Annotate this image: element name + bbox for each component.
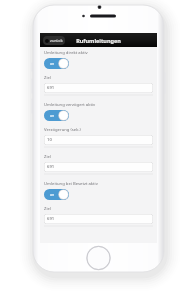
staticText: 691 — [47, 85, 55, 91]
button[interactable]: Umleitung bei Besetzt aktiv — [40, 178, 157, 203]
button[interactable]: Umleitung an — [44, 189, 69, 200]
button[interactable]: 691 — [44, 214, 153, 224]
button[interactable]: Umleitung an — [44, 110, 69, 121]
staticText: Ziel — [44, 154, 51, 160]
staticText: Rufumleitungen — [76, 37, 121, 44]
button[interactable]: 10 — [44, 135, 153, 145]
staticText: an — [50, 61, 55, 66]
button[interactable]: Ziel — [40, 151, 157, 178]
button[interactable]: 691 — [44, 162, 153, 172]
staticText: zurück — [50, 38, 63, 43]
staticText: an — [50, 192, 55, 197]
button[interactable]: Umleitung direkt aktiv — [40, 47, 157, 72]
button[interactable]: Ziel — [40, 72, 157, 99]
staticText: an — [50, 113, 55, 118]
button[interactable]: Ziel — [40, 203, 157, 230]
staticText: 691 — [47, 216, 55, 222]
button[interactable]: zurück — [43, 36, 65, 45]
button[interactable]: 691 — [44, 83, 153, 93]
staticText: Ziel — [44, 206, 51, 212]
button[interactable]: Umleitung an — [44, 58, 69, 69]
staticText: Ziel — [44, 75, 51, 81]
staticText: 691 — [47, 164, 55, 170]
staticText: Umleitung direkt aktiv — [44, 50, 88, 56]
staticText: Verzögerung (sek.) — [44, 127, 81, 133]
staticText: 10 — [47, 137, 52, 143]
staticText: Umleitung bei Besetzt aktiv — [44, 181, 98, 187]
staticText: Umleitung verzögert aktiv — [44, 102, 96, 108]
button[interactable]: Verzögerung (sek.) — [40, 124, 157, 151]
button[interactable]: Umleitung verzögert aktiv — [40, 99, 157, 124]
